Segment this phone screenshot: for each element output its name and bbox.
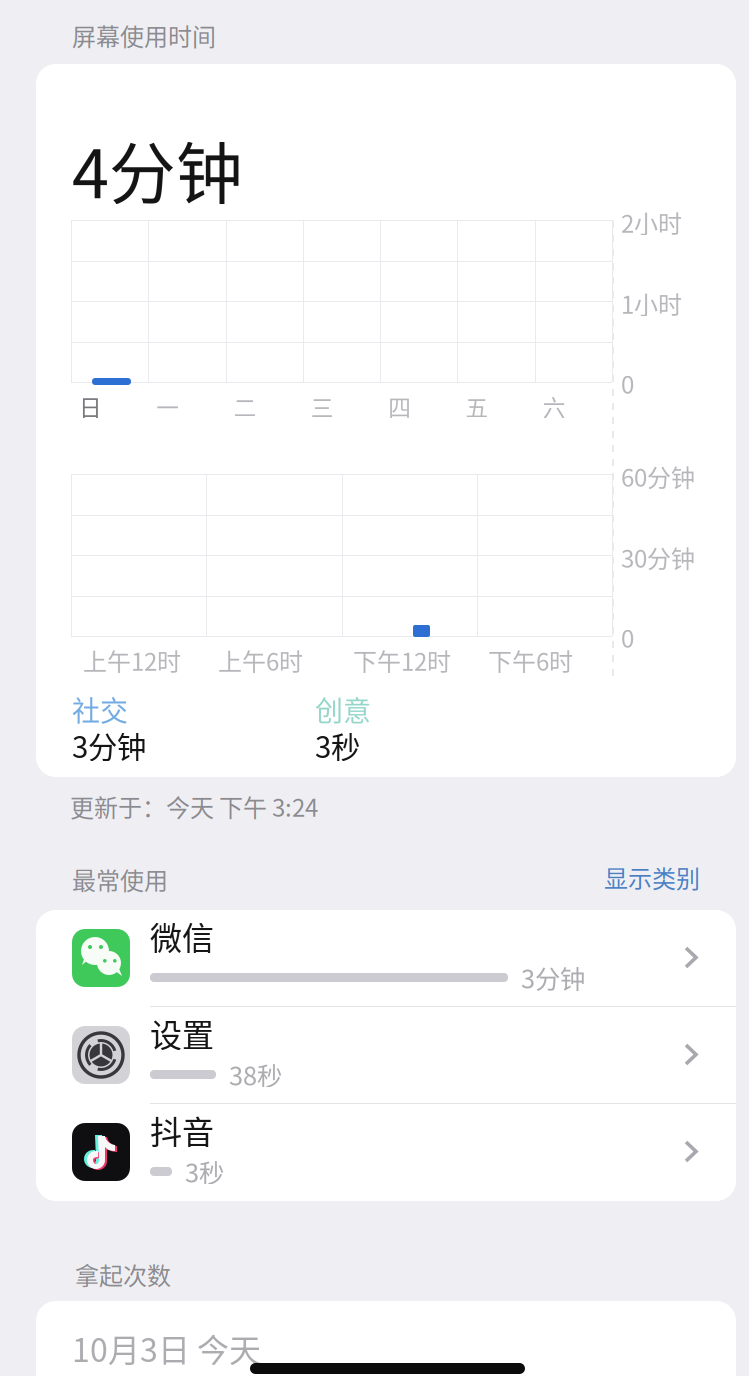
- staticText: 下午12时: [353, 643, 451, 678]
- staticText: 3秒: [315, 724, 360, 766]
- staticText: 4分钟: [72, 121, 243, 217]
- staticText: 三: [311, 390, 334, 423]
- staticText: 2小时: [621, 205, 682, 240]
- staticText: 下午6时: [488, 643, 573, 678]
- staticText: 社交: [72, 689, 128, 729]
- staticText: 设置: [150, 1010, 214, 1056]
- staticText: 上午6时: [218, 643, 303, 678]
- staticText: 微信: [150, 913, 214, 959]
- staticText: 0: [621, 620, 634, 655]
- staticText: 一: [156, 390, 179, 423]
- staticText: 二: [234, 390, 257, 423]
- button[interactable]: 抖音: [36, 1104, 736, 1201]
- staticText: 最常使用: [72, 862, 168, 897]
- button[interactable]: 微信: [36, 910, 736, 1007]
- staticText: 30分钟: [621, 540, 695, 575]
- staticText: 上午12时: [83, 643, 181, 678]
- staticText: 1小时: [621, 286, 682, 321]
- staticText: 3分钟: [72, 724, 146, 766]
- staticText: 0: [621, 366, 634, 401]
- staticText: 3秒: [185, 1153, 224, 1190]
- button[interactable]: 设置: [36, 1007, 736, 1104]
- staticText: 六: [543, 390, 566, 423]
- staticText: 屏幕使用时间: [72, 18, 216, 53]
- staticText: 日: [79, 390, 102, 423]
- staticText: 10月3日 今天: [72, 1325, 261, 1371]
- staticText: 60分钟: [621, 459, 695, 494]
- staticText: 显示类别: [604, 860, 700, 895]
- staticText: 五: [465, 390, 488, 423]
- staticText: 抖音: [150, 1107, 214, 1153]
- staticText: 更新于：今天 下午 3:24: [70, 789, 318, 824]
- button[interactable]: 显示类别: [0, 0, 96, 35]
- staticText: 拿起次数: [75, 1257, 171, 1292]
- staticText: 四: [388, 390, 411, 423]
- staticText: 38秒: [229, 1056, 282, 1093]
- staticText: 创意: [315, 689, 371, 729]
- staticText: 3分钟: [521, 959, 585, 996]
